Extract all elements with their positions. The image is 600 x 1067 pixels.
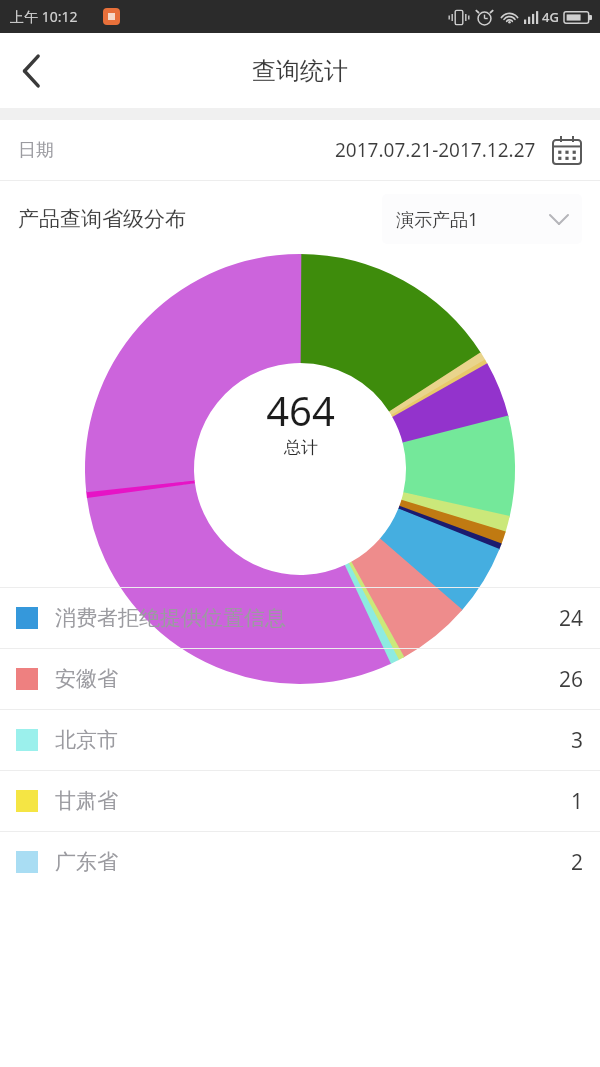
staticText: 4G [542,8,559,26]
staticText: 24 [559,604,584,633]
staticText: 北京市 [55,727,118,753]
button[interactable]: 日期 [0,120,600,180]
button[interactable]: 安徽省 [0,649,600,709]
staticText: 2 [571,848,584,877]
staticText: 26 [559,665,584,694]
staticText: 上午 10:12 [10,7,78,26]
staticText: 甘肃省 [55,788,118,814]
staticText: 1 [571,787,584,816]
staticText: 消费者拒绝提供位置信息 [55,605,286,631]
button[interactable]: 甘肃省 [0,771,600,831]
button[interactable]: 北京市 [0,710,600,770]
staticText: 总计 [284,437,318,458]
staticText: 3 [571,726,584,755]
staticText: 安徽省 [55,666,118,692]
staticText: 日期 [18,139,54,162]
button[interactable]: 广东省 [0,832,600,892]
button[interactable]: 消费者拒绝提供位置信息 [0,588,600,648]
staticText: 2017.07.21-2017.12.27 [335,137,536,163]
staticText: 464 [266,383,335,437]
button[interactable]: 返回 [0,39,64,103]
button[interactable]: 演示产品1 [382,194,582,244]
staticText: 产品查询省级分布 [18,206,186,232]
staticText: 广东省 [55,849,118,875]
staticText: 查询统计 [252,56,348,86]
staticText: 演示产品1 [396,207,479,232]
